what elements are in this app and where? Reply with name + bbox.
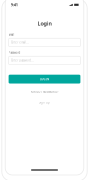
staticText: FORGOT PASSWORD? (31, 90, 58, 94)
staticText: Enter email... (11, 41, 29, 44)
staticText: 9:41 (11, 2, 18, 7)
button[interactable]: LOGIN (9, 75, 80, 83)
staticText: Email (9, 33, 15, 36)
staticText: Enter password... (11, 59, 34, 62)
button[interactable]: FORGOT PASSWORD? (9, 90, 80, 93)
staticText: Password (9, 51, 21, 54)
staticText: LOGIN (40, 77, 49, 81)
staticText: Login (37, 20, 51, 27)
staticText: Sign up (39, 101, 50, 104)
button[interactable]: Sign up (9, 101, 80, 104)
